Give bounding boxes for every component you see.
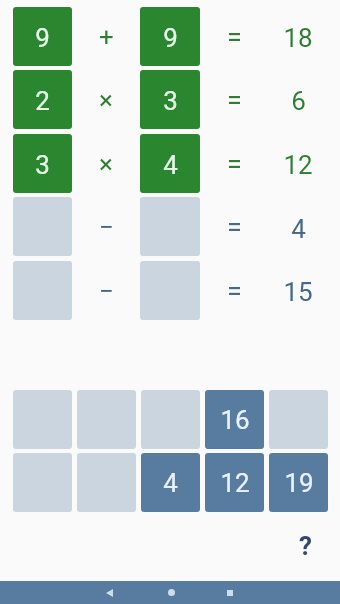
staticText: 3	[163, 86, 178, 116]
staticText: −	[99, 276, 114, 306]
button[interactable]: Home	[151, 581, 191, 604]
staticText: 12	[220, 468, 250, 498]
button[interactable]: Tile 9	[13, 7, 72, 66]
button[interactable]: Number 16	[205, 390, 264, 449]
staticText: 12	[283, 150, 313, 180]
staticText: 2	[35, 86, 50, 116]
staticText: 18	[283, 23, 313, 53]
staticText: =	[227, 148, 242, 180]
button[interactable]: Tile 3	[13, 134, 72, 193]
staticText: 4	[163, 468, 178, 498]
button[interactable]: Number 4	[141, 453, 200, 512]
staticText: 19	[284, 468, 314, 498]
staticText: 16	[220, 405, 250, 435]
staticText: =	[227, 84, 242, 116]
button[interactable]: Tile 4	[140, 134, 200, 193]
button[interactable]: Tile 2	[13, 70, 72, 129]
staticText: 4	[163, 150, 178, 180]
staticText: +	[99, 22, 114, 52]
staticText: 9	[35, 23, 50, 53]
button[interactable]: Number 12	[205, 453, 264, 512]
button[interactable]: Tile 3	[140, 70, 200, 129]
staticText: 3	[35, 150, 50, 180]
staticText: =	[227, 275, 242, 307]
staticText: 9	[163, 23, 178, 53]
button[interactable]: Hint	[290, 531, 320, 561]
staticText: =	[227, 21, 242, 53]
button[interactable]: Number 19	[269, 453, 328, 512]
staticText: −	[99, 212, 114, 242]
button[interactable]: Recent apps	[210, 581, 250, 604]
staticText: 4	[291, 214, 306, 244]
staticText: 15	[283, 277, 313, 307]
staticText: 6	[291, 86, 306, 116]
button[interactable]: Tile 9	[140, 7, 200, 66]
button[interactable]: Back	[89, 581, 129, 604]
staticText: ?	[299, 531, 312, 561]
staticText: =	[227, 211, 242, 243]
staticText: ×	[99, 149, 113, 179]
staticText: ×	[99, 85, 113, 115]
